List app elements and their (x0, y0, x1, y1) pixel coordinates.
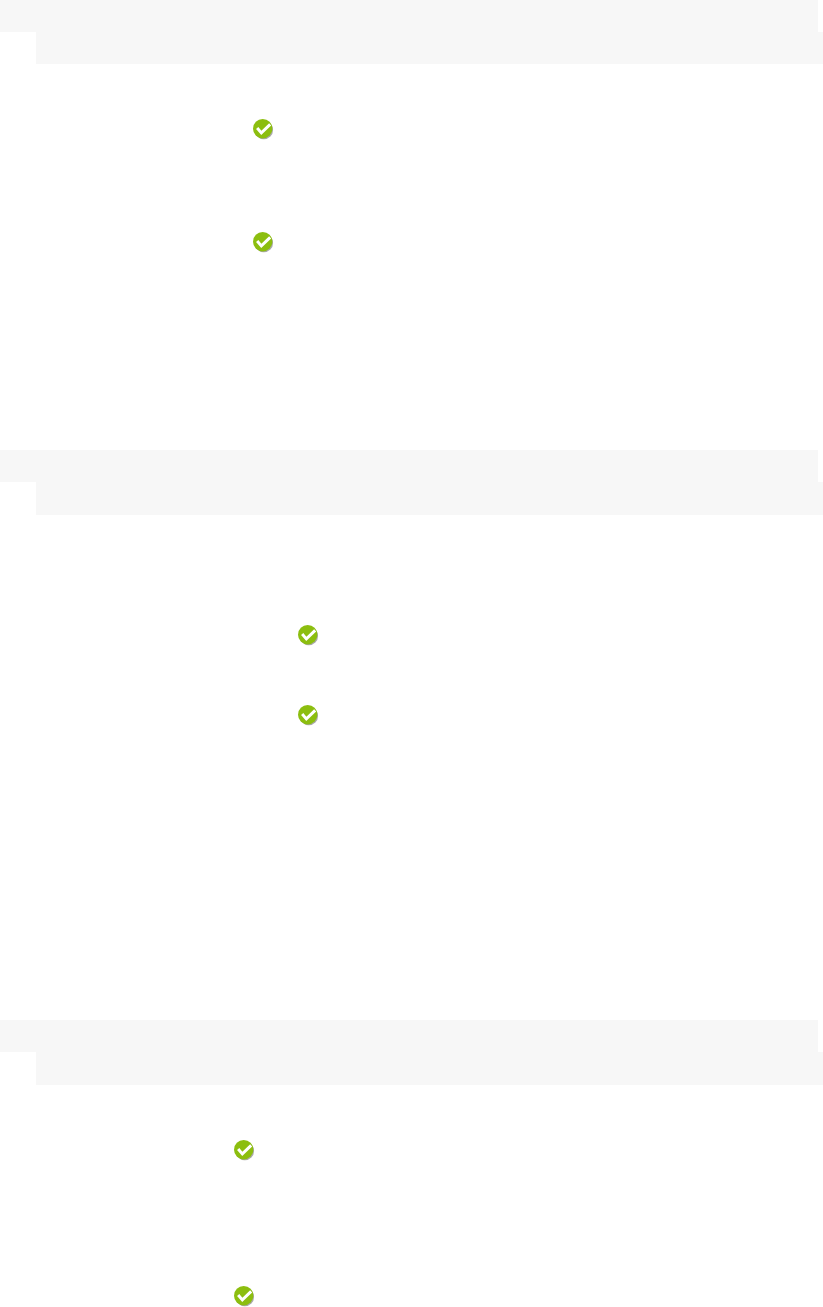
button[interactable]: Verified item 6 (234, 1286, 255, 1307)
button[interactable]: Verified item 1 (253, 119, 274, 140)
button[interactable]: Verified item 5 (234, 1140, 255, 1161)
button[interactable]: Verified item 3 (298, 625, 319, 646)
button[interactable]: Verified item 4 (298, 705, 319, 726)
button[interactable]: Verified item 2 (253, 232, 274, 253)
